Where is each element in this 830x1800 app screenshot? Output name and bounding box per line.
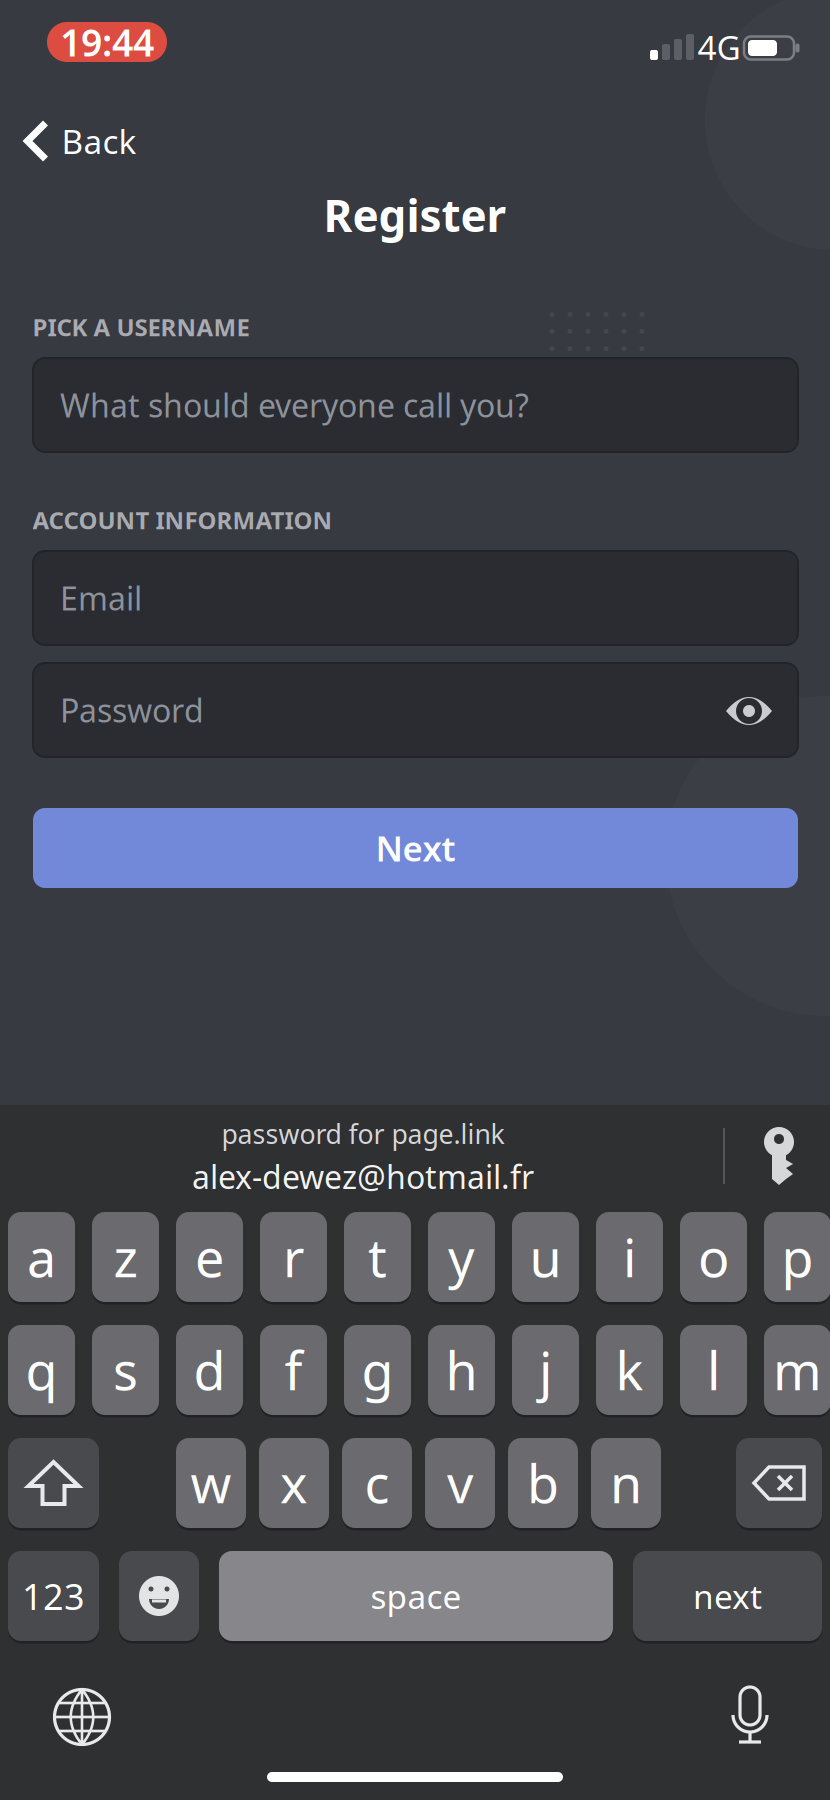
button[interactable]: o [680,1210,747,1303]
staticText: ACCOUNT INFORMATION [32,504,332,536]
button[interactable]: f [260,1323,327,1416]
staticText: next [693,1574,762,1618]
button[interactable]: next [633,1549,822,1642]
staticText: o [698,1222,729,1292]
staticText: u [529,1222,561,1292]
button[interactable]: e [176,1210,243,1303]
button[interactable]: t [344,1210,411,1303]
button[interactable]: q [8,1323,75,1416]
button[interactable] [725,684,773,738]
button[interactable]: r [260,1210,327,1303]
button[interactable]: 19:44 [47,17,167,67]
button[interactable] [736,1436,822,1529]
staticText: PICK A USERNAME [32,311,249,343]
staticText: q [25,1335,57,1405]
staticText: s [113,1335,138,1405]
staticText: 4G [697,25,740,69]
button[interactable]: What should everyone call you? [33,358,798,452]
staticText: Password [60,689,204,731]
staticText: d [193,1335,225,1405]
staticText: r [283,1222,304,1292]
button[interactable]: c [342,1436,412,1529]
staticText: alex-dewez@hotmail.fr [192,1155,534,1198]
button[interactable]: g [344,1323,411,1416]
staticText: Next [375,825,455,871]
staticText: g [361,1335,393,1405]
button[interactable]: space [219,1549,613,1642]
staticText: x [280,1448,308,1518]
staticText: space [370,1574,461,1618]
button[interactable] [119,1549,199,1642]
button[interactable]: v [425,1436,495,1529]
staticText: Back [61,119,136,163]
button[interactable]: Back [23,119,136,163]
button[interactable] [8,1436,99,1529]
button[interactable]: Email [33,551,798,645]
staticText: e [195,1222,224,1292]
button[interactable]: y [428,1210,495,1303]
button[interactable]: password for page.link [192,1116,534,1198]
staticText: z [113,1222,137,1292]
staticText: y [448,1222,475,1292]
staticText: n [610,1448,642,1518]
staticText: p [781,1222,813,1292]
staticText: k [615,1335,643,1405]
button[interactable]: Next [33,808,798,888]
staticText: password for page.link [221,1116,504,1151]
button[interactable]: d [176,1323,243,1416]
button[interactable]: s [92,1323,159,1416]
staticText: f [284,1335,302,1405]
button[interactable]: x [259,1436,329,1529]
staticText: t [368,1222,387,1292]
button[interactable]: n [591,1436,661,1529]
button[interactable]: k [596,1323,663,1416]
staticText: c [364,1448,389,1518]
button[interactable]: h [428,1323,495,1416]
button[interactable]: i [596,1210,663,1303]
staticText: j [539,1335,552,1405]
button[interactable] [732,1687,768,1745]
staticText: v [447,1448,473,1518]
staticText: Email [60,577,142,619]
staticText: i [623,1222,636,1292]
button[interactable]: 123 [8,1549,99,1642]
button[interactable]: m [764,1323,830,1416]
staticText: h [445,1335,477,1405]
button[interactable]: z [92,1210,159,1303]
staticText: b [527,1448,559,1518]
staticText: m [773,1335,822,1405]
staticText: a [27,1222,56,1292]
staticText: 19:44 [60,17,154,67]
button[interactable]: a [8,1210,75,1303]
staticText: l [707,1335,720,1405]
button[interactable]: l [680,1323,747,1416]
button[interactable]: p [764,1210,830,1303]
button[interactable]: Password [33,663,798,757]
button[interactable]: w [176,1436,246,1529]
staticText: What should everyone call you? [60,384,529,426]
staticText: Register [323,186,506,244]
button[interactable] [764,1129,794,1185]
staticText: 123 [22,1572,85,1620]
button[interactable] [54,1689,109,1744]
staticText: w [190,1448,231,1518]
button[interactable]: b [508,1436,578,1529]
button[interactable]: j [512,1323,579,1416]
button[interactable]: u [512,1210,579,1303]
